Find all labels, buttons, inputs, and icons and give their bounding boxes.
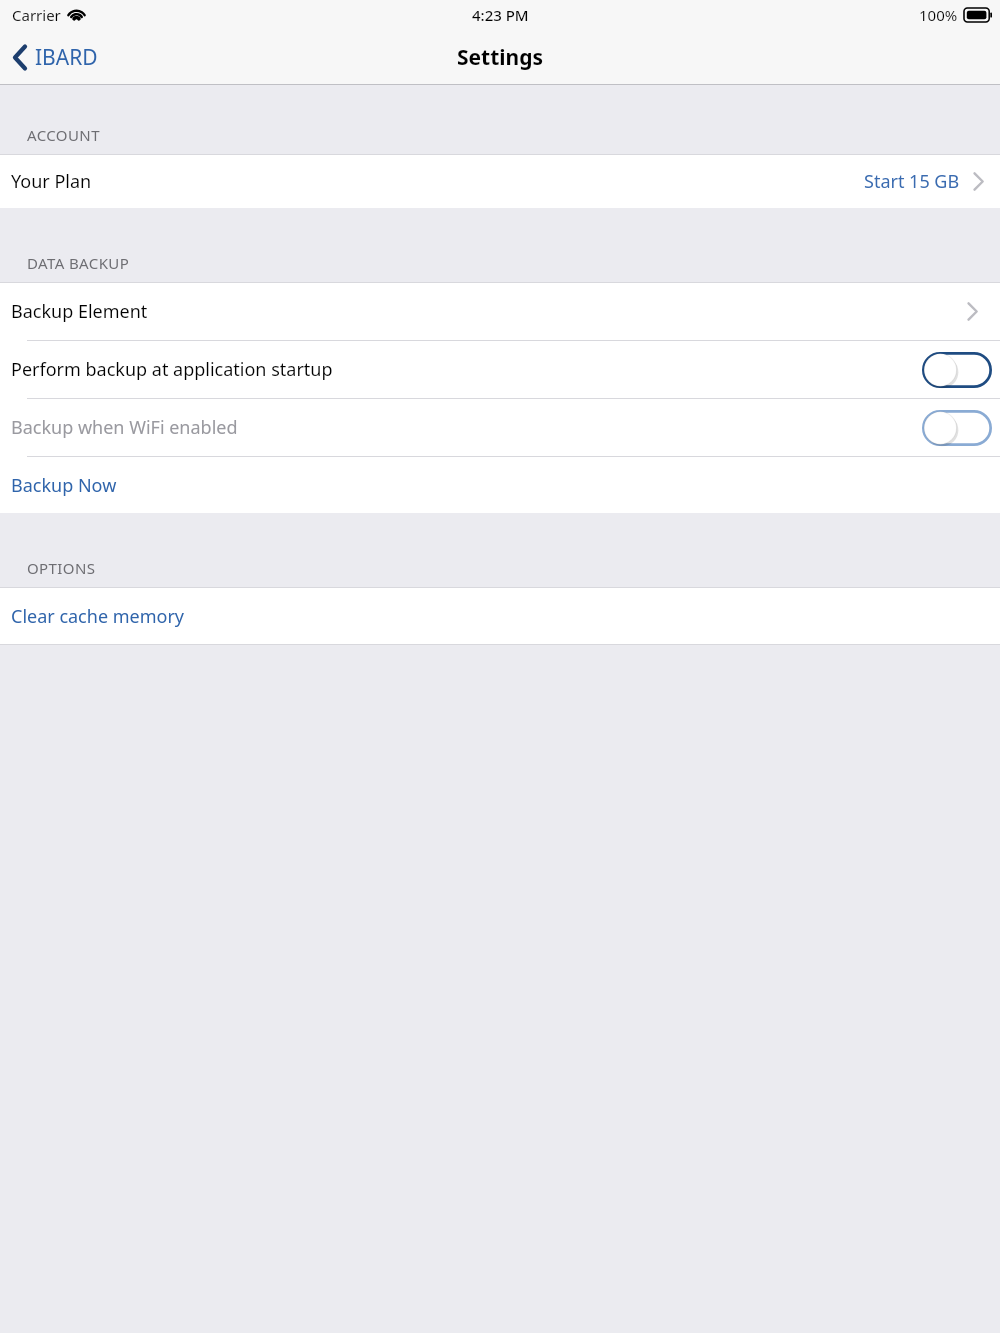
staticText: Perform backup at application startup (11, 357, 333, 382)
staticText: 100% (919, 5, 958, 25)
staticText: IBARD (35, 43, 98, 72)
staticText: Start 15 GB (864, 169, 960, 194)
button[interactable]: Backup when WiFi enabled (0, 399, 1000, 456)
staticText: Backup Now (11, 473, 117, 498)
button[interactable]: Clear cache memory (0, 588, 1000, 644)
button[interactable]: Perform backup at application startup (0, 341, 1000, 398)
staticText: Clear cache memory (11, 604, 185, 629)
button[interactable]: IBARD (0, 35, 114, 80)
staticText: Your Plan (11, 169, 92, 194)
staticText: ACCOUNT (27, 125, 100, 145)
staticText: DATA BACKUP (27, 253, 130, 273)
button[interactable]: Backup when WiFi enabled (922, 410, 992, 446)
button[interactable]: Perform backup at application startup (922, 352, 992, 388)
staticText: Settings (457, 43, 544, 72)
button[interactable]: Backup Now (0, 457, 1000, 513)
staticText: Carrier (12, 5, 61, 25)
button[interactable]: Backup Element (0, 283, 1000, 340)
staticText: OPTIONS (27, 558, 96, 578)
button[interactable]: Your Plan (0, 155, 1000, 208)
staticText: 4:23 PM (472, 5, 529, 25)
staticText: Backup Element (11, 299, 148, 324)
staticText: Backup when WiFi enabled (11, 415, 238, 440)
